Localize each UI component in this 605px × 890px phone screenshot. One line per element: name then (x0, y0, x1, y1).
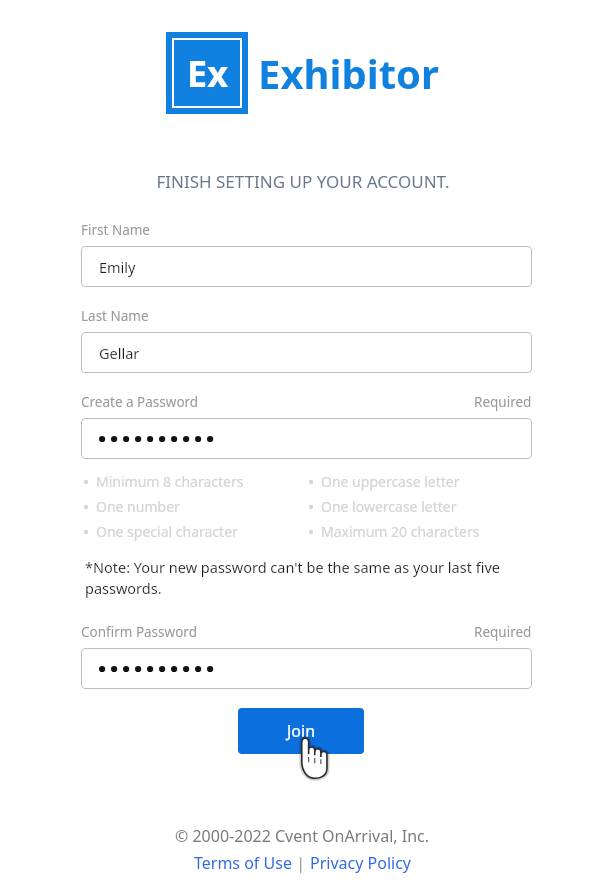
staticText: Gellar (99, 343, 140, 363)
staticText: Join (287, 720, 316, 742)
staticText: First Name (81, 221, 150, 239)
button[interactable]: Emily (81, 246, 532, 287)
staticText: Required (474, 393, 532, 411)
staticText: FINISH SETTING UP YOUR ACCOUNT. (156, 170, 450, 193)
staticText: Confirm Password (81, 623, 197, 641)
staticText: One number (96, 497, 180, 516)
button[interactable]: Terms of Use (194, 852, 292, 874)
staticText: One special character (96, 522, 238, 541)
staticText: Terms of Use (194, 852, 292, 874)
staticText: Maximum 20 characters (321, 522, 480, 541)
staticText: Required (474, 623, 532, 641)
staticText: © 2000-2022 Cvent OnArrival, Inc. (175, 825, 430, 847)
button[interactable] (81, 418, 532, 459)
staticText: Ex (187, 49, 228, 98)
staticText: Last Name (81, 307, 149, 325)
staticText: *Note: Your new password can't be the sa… (85, 557, 522, 599)
staticText: One uppercase letter (321, 472, 460, 491)
staticText: | (292, 852, 310, 874)
button[interactable]: Gellar (81, 332, 532, 373)
button[interactable]: Join (238, 708, 364, 754)
staticText: Exhibitor (258, 46, 439, 100)
button[interactable] (81, 648, 532, 689)
staticText: Create a Password (81, 393, 199, 411)
button[interactable]: Privacy Policy (310, 852, 411, 874)
staticText: Privacy Policy (310, 852, 411, 874)
staticText: Minimum 8 characters (96, 472, 244, 491)
staticText: One lowercase letter (321, 497, 457, 516)
staticText: Emily (99, 257, 136, 277)
